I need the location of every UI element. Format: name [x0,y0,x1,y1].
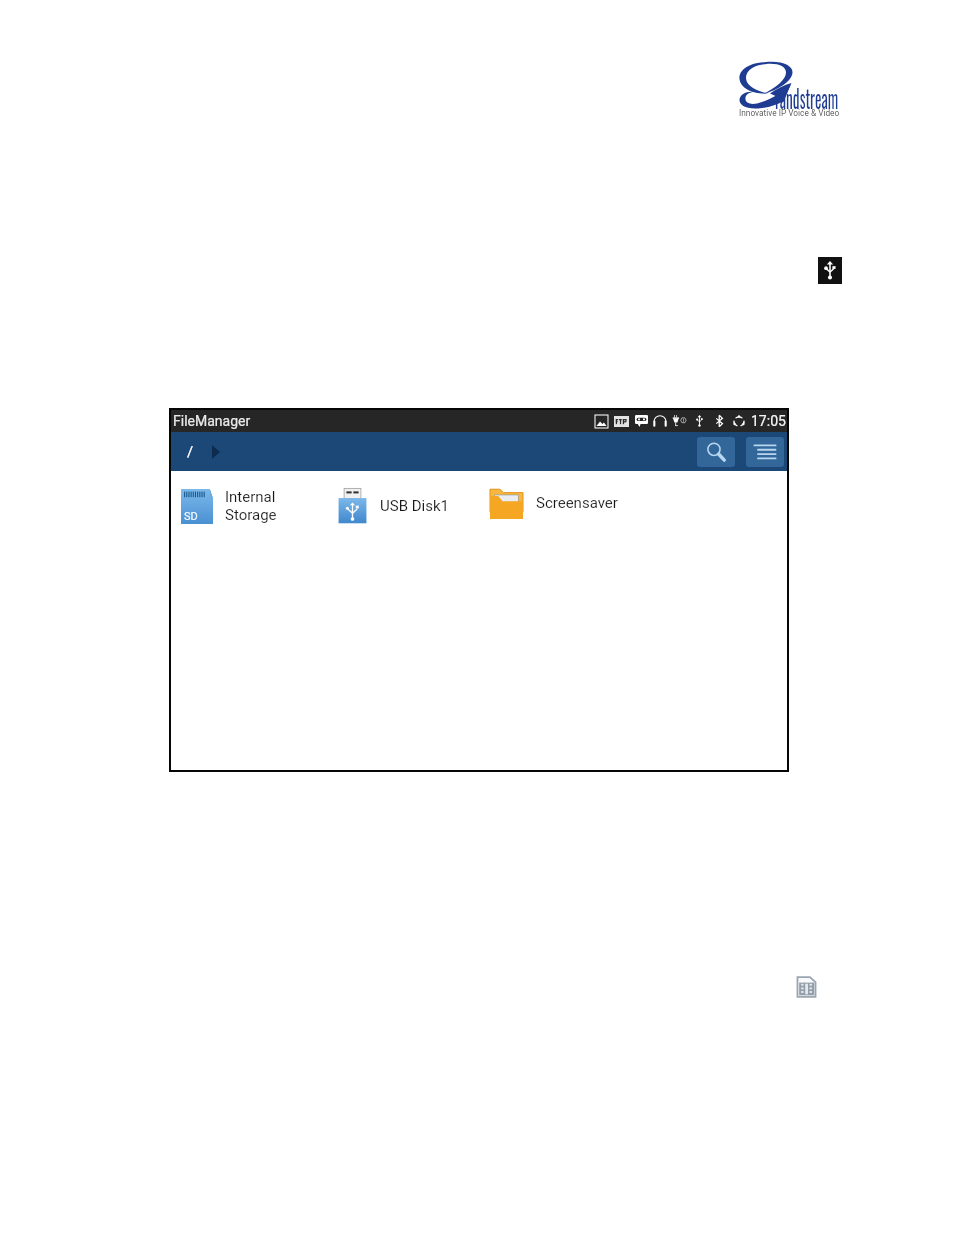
staticText: randstream [775,79,843,116]
button[interactable]: Next folder [208,439,224,465]
staticText: FileManager [173,413,251,429]
staticText: / [187,443,194,461]
button[interactable]: Screensaver [490,483,650,523]
staticText: Internal Storage [225,488,277,524]
staticText: Screensaver [536,494,618,512]
staticText: 17:05 [751,413,786,429]
button[interactable]: SD [181,484,323,528]
button[interactable]: USB Disk1 [338,486,458,526]
staticText: SD [184,510,198,523]
button[interactable]: / [183,439,197,465]
button[interactable]: Menu [746,437,784,467]
staticText: USB Disk1 [380,497,449,515]
button[interactable]: Search [697,437,735,467]
staticText: Innovative IP Voice & Video [739,108,859,118]
